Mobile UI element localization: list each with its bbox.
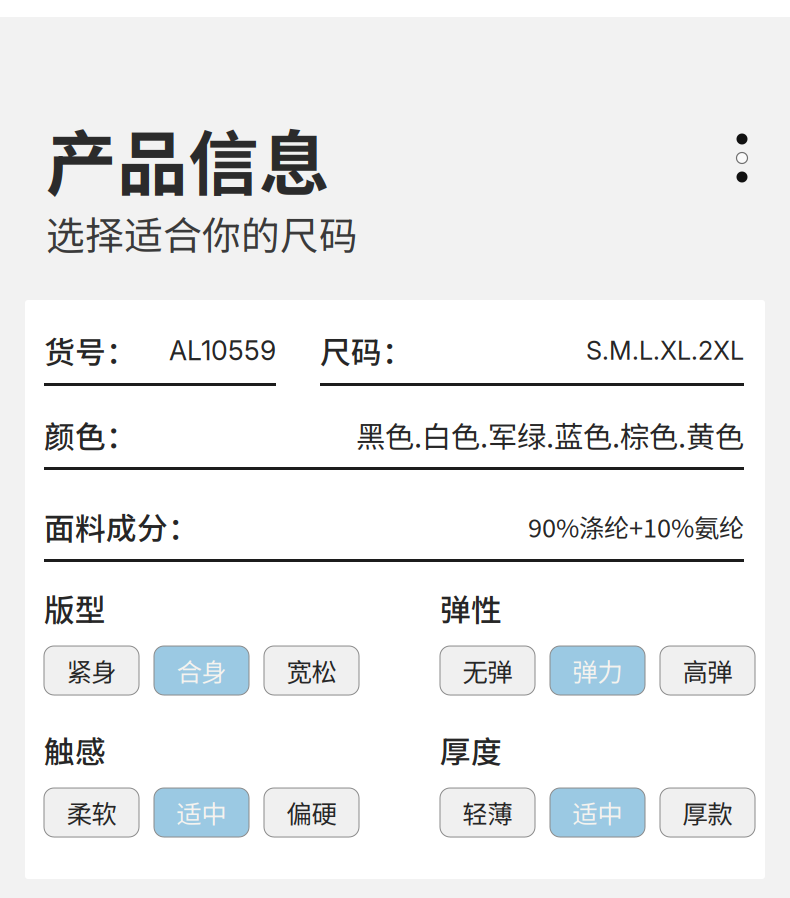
staticText: 轻薄	[462, 794, 512, 831]
staticText: 适中	[572, 794, 622, 831]
staticText: 合身	[176, 652, 226, 689]
button[interactable]: 厚款	[660, 788, 755, 837]
staticText: 紧身	[66, 652, 116, 689]
button[interactable]: More options	[716, 124, 768, 192]
staticText: 90%涤纶+10%氨纶	[528, 508, 744, 545]
staticText: 产品信息	[46, 108, 330, 210]
staticText: 宽松	[286, 652, 336, 689]
staticText: AL10559	[169, 334, 276, 367]
staticText: 触感	[44, 728, 106, 772]
button[interactable]: 宽松	[264, 646, 359, 695]
staticText: 弹力	[572, 652, 622, 689]
button[interactable]: 偏硬	[264, 788, 359, 837]
staticText: 选择适合你的尺码	[46, 205, 358, 261]
button[interactable]: 柔软	[44, 788, 139, 837]
staticText: 适中	[176, 794, 226, 831]
button[interactable]: 轻薄	[440, 788, 535, 837]
staticText: 弹性	[440, 586, 502, 630]
button[interactable]: 紧身	[44, 646, 139, 695]
staticText: 偏硬	[286, 794, 336, 831]
button[interactable]: 适中	[550, 788, 645, 837]
staticText: 黑色.白色.军绿.蓝色.棕色.黄色	[356, 414, 744, 456]
staticText: S.M.L.XL.2XL	[586, 335, 744, 366]
staticText: 颜色：	[44, 413, 137, 457]
button[interactable]: 弹力	[550, 646, 645, 695]
staticText: 无弹	[462, 652, 512, 689]
button[interactable]: 高弹	[660, 646, 755, 695]
button[interactable]: 合身	[154, 646, 249, 695]
staticText: 高弹	[682, 652, 732, 689]
staticText: 厚款	[682, 794, 732, 831]
staticText: 柔软	[66, 794, 116, 831]
staticText: 货号：	[44, 328, 137, 373]
staticText: 厚度	[440, 728, 502, 772]
staticText: 尺码：	[320, 328, 413, 373]
staticText: 面料成分：	[44, 504, 199, 549]
staticText: 版型	[44, 586, 106, 630]
button[interactable]: 无弹	[440, 646, 535, 695]
button[interactable]: 适中	[154, 788, 249, 837]
